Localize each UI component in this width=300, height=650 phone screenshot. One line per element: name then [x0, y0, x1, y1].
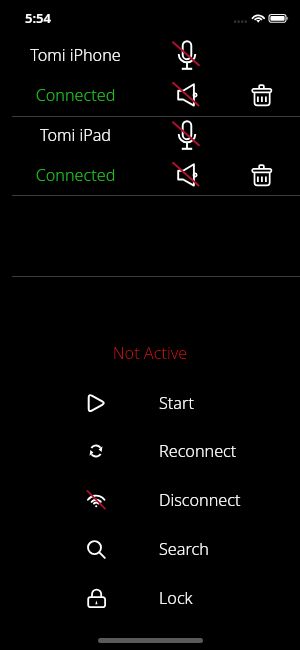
staticText: Search — [159, 538, 209, 560]
button[interactable]: Delete — [246, 79, 278, 111]
button[interactable]: Microphone muted — [171, 39, 203, 71]
button[interactable]: Speaker muted — [171, 79, 203, 111]
button[interactable]: Tomi iPad — [0, 116, 300, 196]
staticText: Connected — [0, 84, 151, 106]
staticText: Connected — [0, 164, 151, 186]
button[interactable]: Start — [0, 379, 300, 427]
staticText: Tomi iPad — [0, 124, 151, 146]
button[interactable]: Search — [0, 525, 300, 573]
button[interactable]: Delete — [246, 159, 278, 191]
button[interactable]: Lock — [0, 574, 300, 622]
staticText: Disconnect — [159, 489, 241, 511]
staticText: 5:54 — [25, 9, 51, 27]
staticText: Reconnect — [159, 440, 237, 462]
staticText: Lock — [159, 587, 193, 609]
button[interactable]: Microphone muted — [171, 119, 203, 151]
staticText: Not Active — [0, 342, 300, 364]
button[interactable]: Tomi iPhone — [0, 36, 300, 116]
button[interactable]: Disconnect — [0, 476, 300, 524]
staticText: Start — [159, 392, 194, 414]
button[interactable]: Reconnect — [0, 427, 300, 475]
staticText: Tomi iPhone — [0, 44, 151, 66]
button[interactable]: Speaker muted — [171, 159, 203, 191]
